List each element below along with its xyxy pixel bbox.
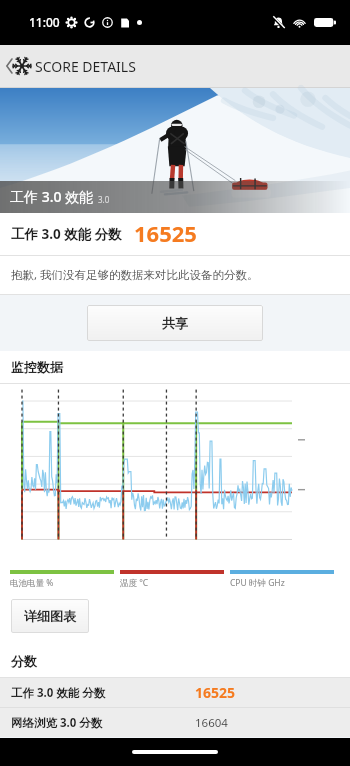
staticText: 工作 3.0 效能 分数 [11,685,106,701]
staticText: 3.0 [98,194,110,205]
staticText: 监控数据 [11,359,63,375]
button[interactable]: 详细图表 [11,599,89,633]
staticText: 详细图表 [24,608,76,624]
staticText: 16525 [195,683,236,702]
button[interactable]: 网络浏览 3.0 分数 [0,708,350,737]
staticText: 共享 [162,315,188,331]
staticText: 温度 °C [120,577,149,589]
staticText: 网络浏览 3.0 分数 [11,715,103,731]
staticText: 电池电量 % [10,577,54,589]
staticText: 16525 [134,218,197,248]
button[interactable]: 工作 3.0 效能 分数 [0,678,350,707]
button[interactable]: Back [1,45,17,87]
staticText: 工作 3.0 效能 分数 [11,225,122,243]
staticText: 11:00 [29,14,60,30]
button[interactable]: 共享 [87,305,263,341]
button[interactable]: Home [132,750,218,754]
staticText: 工作 3.0 效能 [10,187,94,206]
staticText: SCORE DETAILS [35,57,136,76]
staticText: 16604 [195,715,228,731]
staticText: 分数 [11,653,37,669]
staticText: CPU 时钟 GHz [230,577,285,589]
staticText: 抱歉, 我们没有足够的数据来对比此设备的分数。 [11,267,259,283]
